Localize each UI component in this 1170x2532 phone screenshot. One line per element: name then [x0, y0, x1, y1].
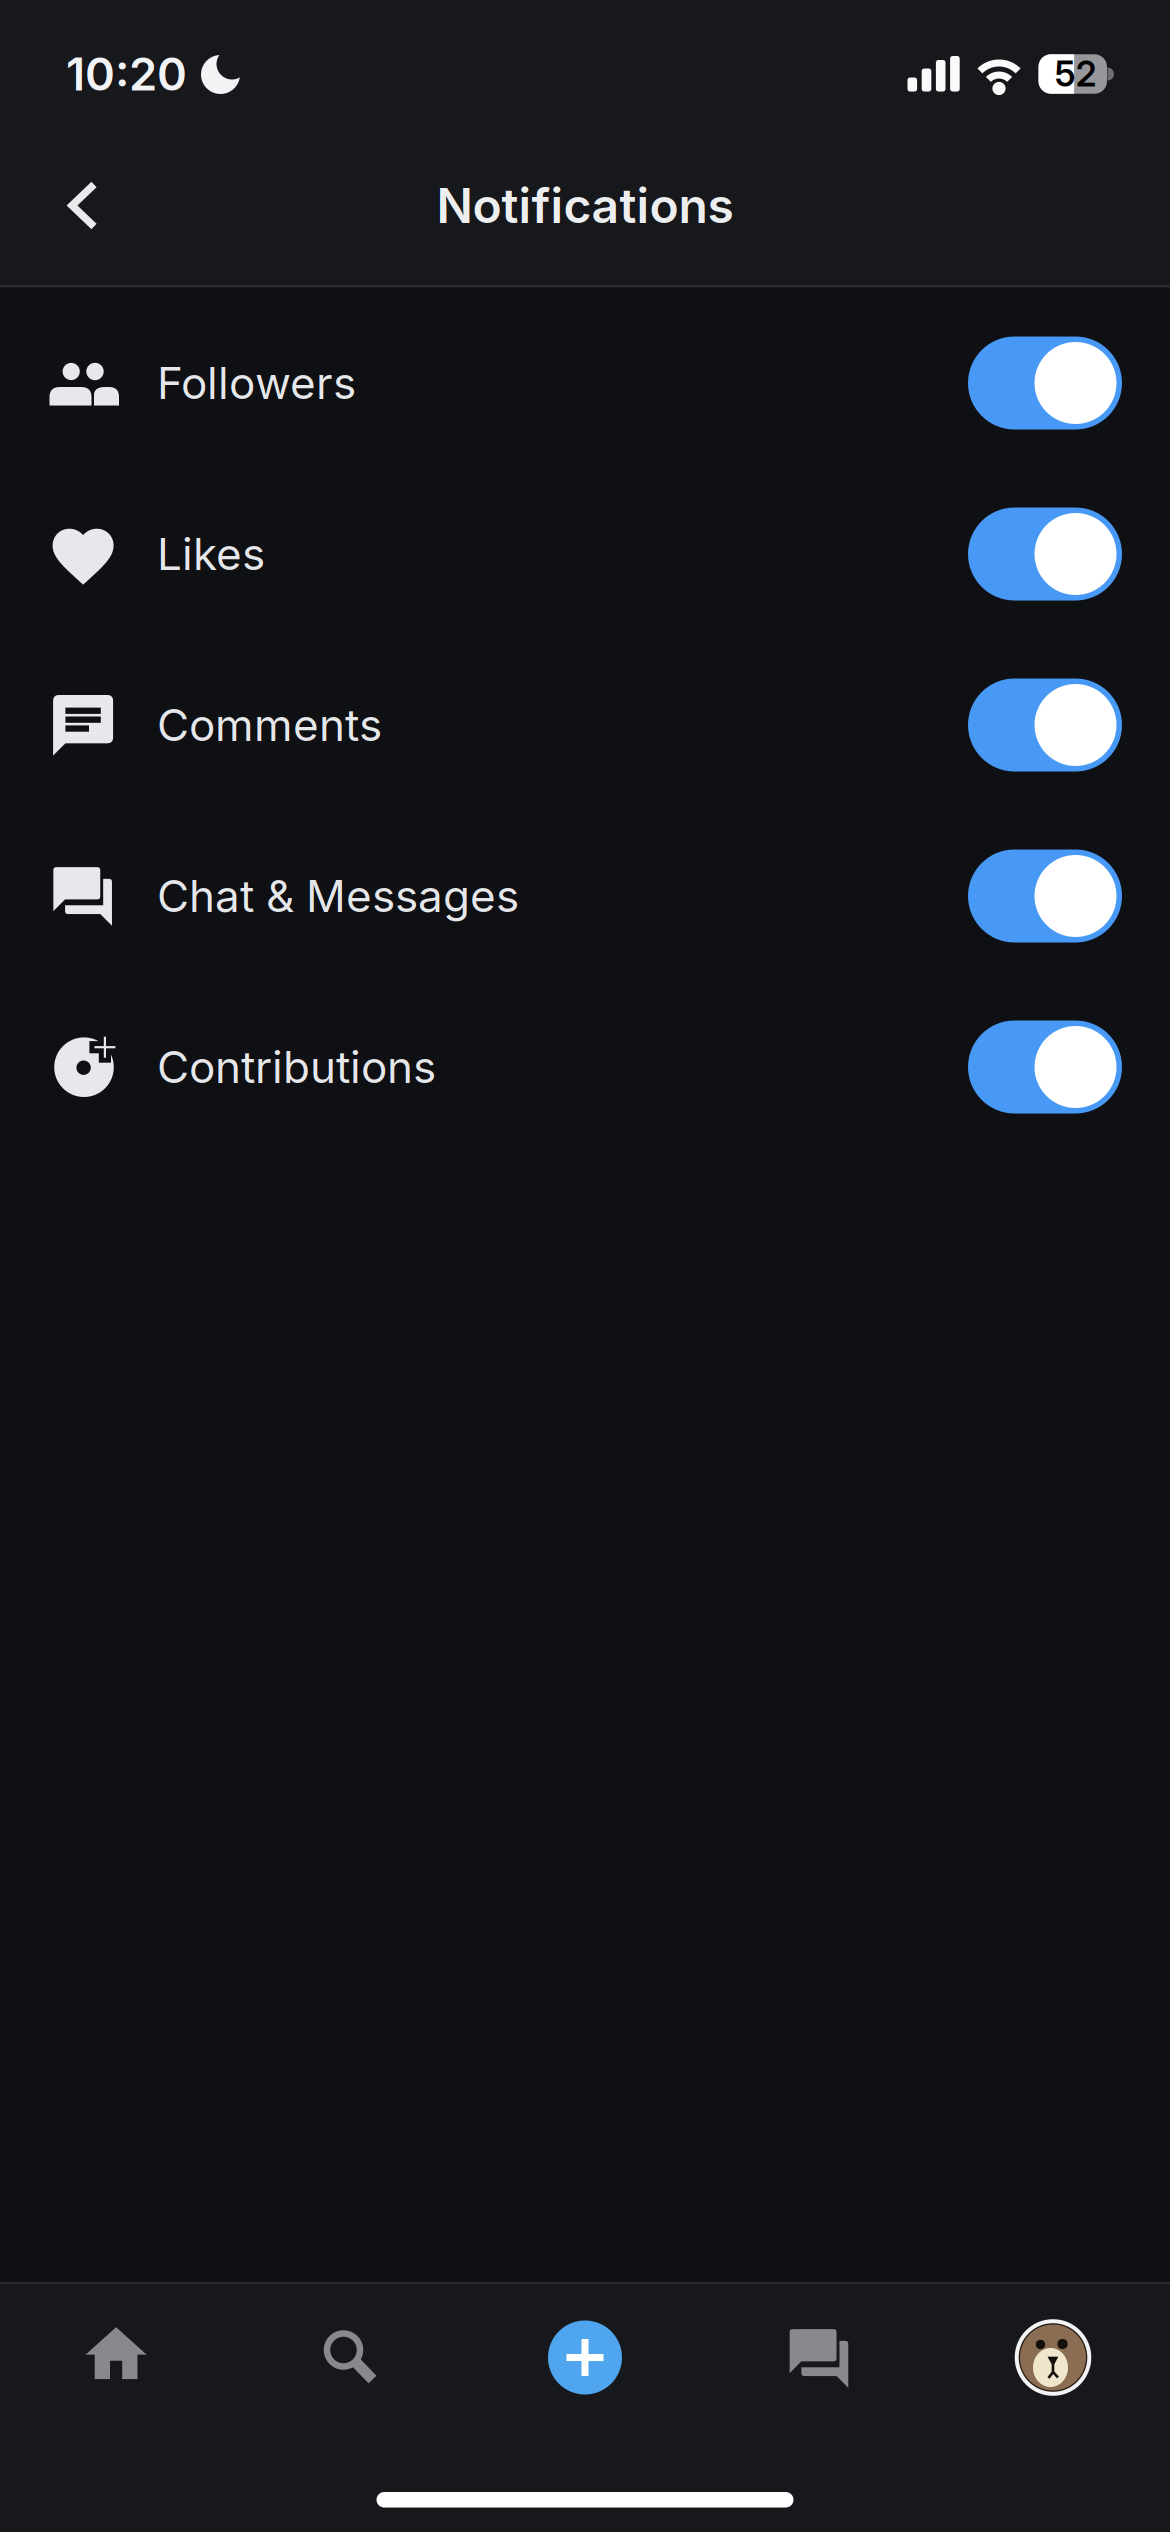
button[interactable]: Contributions — [968, 1020, 1122, 1113]
button[interactable]: Comments — [968, 678, 1122, 771]
staticText: Likes — [157, 527, 265, 581]
staticText: 10:20 — [66, 47, 187, 101]
staticText: Comments — [157, 698, 382, 752]
button[interactable]: Back — [0, 172, 118, 238]
button[interactable]: Chat — [702, 2284, 936, 2430]
staticText: 52 — [1055, 53, 1097, 95]
staticText: Contributions — [157, 1040, 436, 1094]
button[interactable]: Profile — [936, 2284, 1170, 2430]
staticText: Notifications — [436, 176, 733, 235]
staticText: Followers — [157, 356, 356, 410]
button[interactable]: Likes — [968, 507, 1122, 600]
button[interactable]: Search — [234, 2284, 468, 2430]
staticText: Chat & Messages — [157, 869, 519, 923]
button[interactable]: Chat & Messages — [968, 849, 1122, 942]
button[interactable]: Home — [0, 2284, 234, 2430]
button[interactable]: Followers — [968, 336, 1122, 429]
button[interactable]: Create — [468, 2284, 702, 2430]
